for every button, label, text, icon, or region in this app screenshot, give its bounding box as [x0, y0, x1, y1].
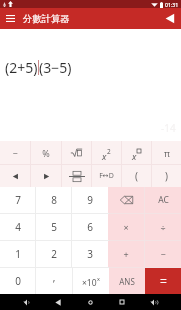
staticText: = [160, 273, 167, 289]
button[interactable]: % [31, 141, 61, 164]
staticText: ×10 [82, 277, 97, 289]
button[interactable]: 4 [0, 214, 35, 240]
staticText: (2+5) [5, 58, 38, 77]
staticText: -14 [161, 121, 176, 135]
button[interactable]: ( [122, 165, 151, 187]
staticText: ANS [119, 276, 135, 287]
staticText: ) [165, 169, 168, 183]
staticText: % [42, 147, 50, 159]
button[interactable]: 7 [0, 187, 35, 213]
button[interactable]: π [152, 141, 181, 164]
staticText: ’ [53, 277, 55, 291]
staticText: 7 [15, 193, 21, 207]
staticText: 01:31 [165, 1, 179, 8]
button[interactable]: Volume up [138, 294, 170, 310]
button[interactable] [62, 141, 91, 164]
staticText: 5 [51, 220, 57, 234]
button[interactable]: Volume down [11, 294, 42, 310]
staticText: x [97, 275, 100, 282]
button[interactable]: x [92, 141, 121, 164]
button[interactable] [31, 165, 61, 187]
staticText: 9 [87, 193, 93, 207]
staticText: − [160, 248, 166, 260]
staticText: x [132, 150, 137, 162]
button[interactable]: × [108, 214, 144, 240]
staticText: 分數計算器 [23, 13, 70, 25]
button[interactable]: AC [145, 187, 181, 213]
button[interactable]: Home [74, 294, 106, 310]
staticText: ÷ [160, 221, 166, 233]
button[interactable]: Recents [106, 294, 138, 310]
button[interactable]: 2 [36, 241, 71, 267]
button[interactable]: ×10 [73, 268, 109, 294]
button[interactable]: 0 [0, 268, 35, 294]
staticText: x [102, 150, 107, 162]
staticText: (3−5) [39, 58, 72, 77]
button[interactable]: x [122, 141, 151, 164]
button[interactable]: 3 [72, 241, 108, 267]
staticText: 8 [51, 193, 57, 207]
button[interactable]: F↔D [92, 165, 121, 187]
button[interactable]: Back [42, 294, 74, 310]
staticText: − [12, 147, 18, 159]
button[interactable] [0, 165, 30, 187]
button[interactable]: = [145, 268, 181, 294]
button[interactable] [62, 165, 91, 187]
staticText: 6 [87, 220, 93, 234]
button[interactable]: − [0, 141, 30, 164]
staticText: + [123, 248, 129, 260]
button[interactable]: 1 [0, 241, 35, 267]
staticText: F↔D [99, 171, 114, 181]
staticText: 1 [15, 247, 21, 261]
button[interactable]: 5 [36, 214, 71, 240]
staticText: 2 [51, 247, 57, 261]
button[interactable]: − [145, 241, 181, 267]
button[interactable]: 8 [36, 187, 71, 213]
staticText: 2 [107, 147, 111, 156]
button[interactable]: Play [159, 8, 181, 29]
button[interactable]: ’ [36, 268, 72, 294]
button[interactable]: ÷ [145, 214, 181, 240]
staticText: π [164, 147, 170, 159]
button[interactable]: 6 [72, 214, 108, 240]
button[interactable]: ) [152, 165, 181, 187]
button[interactable]: Open navigation menu [0, 8, 21, 29]
button[interactable] [108, 187, 144, 213]
staticText: ( [135, 169, 138, 183]
staticText: 0 [15, 274, 21, 288]
button[interactable]: 9 [72, 187, 108, 213]
staticText: 3 [87, 247, 93, 261]
staticText: AC [158, 194, 169, 206]
button[interactable]: + [108, 241, 144, 267]
staticText: × [123, 221, 129, 233]
button[interactable]: ANS [109, 268, 145, 294]
staticText: 4 [15, 220, 21, 234]
